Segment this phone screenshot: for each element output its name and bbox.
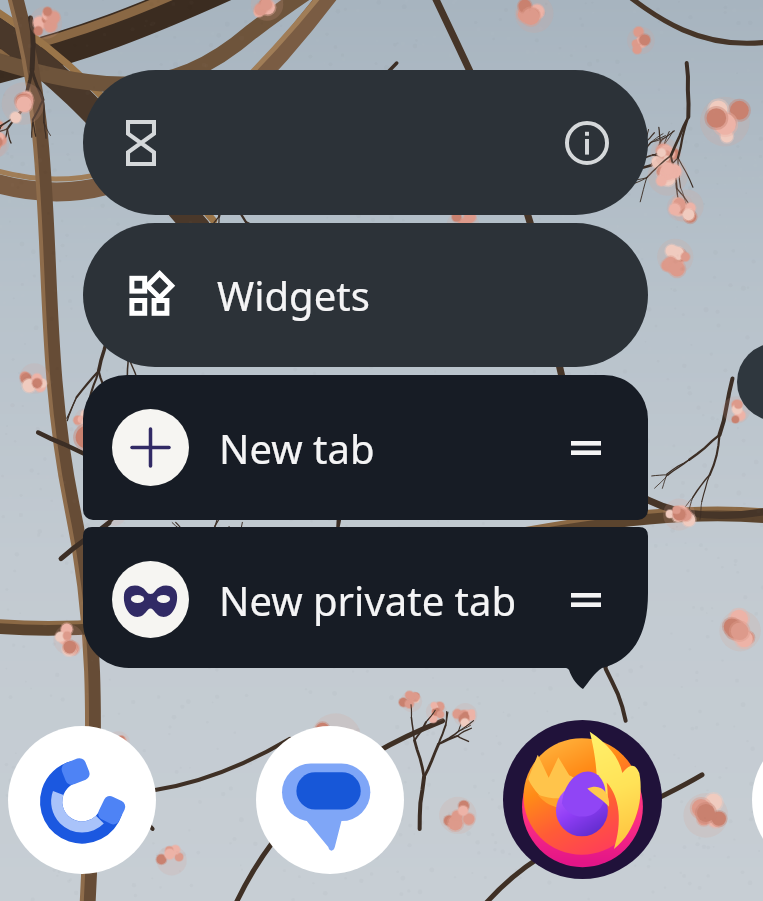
button[interactable]: Messages (256, 726, 404, 874)
button[interactable]: New tab (83, 375, 648, 520)
button[interactable]: New private tab (83, 527, 648, 672)
button[interactable]: Pause app (111, 113, 171, 173)
button[interactable]: Phone (8, 726, 156, 874)
button[interactable]: App (752, 726, 763, 874)
button[interactable]: Firefox (503, 720, 662, 879)
staticText: New private tab (219, 573, 517, 627)
staticText: New tab (219, 421, 375, 475)
button[interactable]: App (737, 343, 763, 421)
staticText: Widgets (217, 268, 370, 322)
button[interactable]: Widgets (83, 223, 648, 367)
button[interactable]: App info (557, 113, 617, 173)
